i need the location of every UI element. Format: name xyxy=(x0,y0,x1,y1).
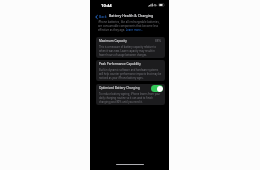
button[interactable]: Maximum Capacity xyxy=(96,37,165,45)
staticText: This is a measure of battery capacity re… xyxy=(99,45,162,57)
button[interactable]: Optimized Battery Charging toggle xyxy=(151,85,163,92)
button[interactable]: Peak Performance Capability xyxy=(96,60,165,68)
staticText: To reduce battery ageing, iPhone learns … xyxy=(99,92,162,104)
button[interactable]: Back xyxy=(93,12,109,21)
staticText: Battery Health & Charging xyxy=(109,13,154,18)
staticText: Built-in dynamic software and hardware s… xyxy=(99,68,162,80)
button[interactable]: Optimized Battery Charging xyxy=(96,84,165,92)
staticText: Maximum Capacity xyxy=(99,39,127,43)
staticText: Optimized Battery Charging xyxy=(99,86,140,90)
staticText: 10:44 xyxy=(101,3,112,9)
staticText: Peak Performance Capability xyxy=(99,62,141,66)
staticText: iPhone batteries, like all rechargeable … xyxy=(98,20,162,32)
staticText: 88% xyxy=(155,39,162,43)
staticText: Back xyxy=(99,14,107,19)
